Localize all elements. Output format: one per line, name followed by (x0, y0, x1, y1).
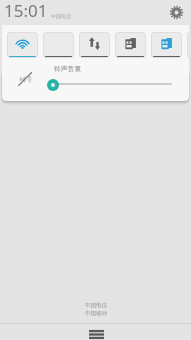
button[interactable]: Quick setting (115, 32, 146, 58)
button[interactable]: Menu (86, 327, 106, 339)
staticText: 中国移动 (85, 310, 107, 317)
staticText: 铃声音量 (54, 64, 82, 73)
button[interactable]: Quick setting (151, 32, 182, 58)
button[interactable]: Quick setting (7, 32, 38, 58)
staticText: 中国电信 (51, 13, 71, 19)
staticText: 15:01 (4, 0, 48, 22)
button[interactable]: Settings (166, 2, 186, 22)
button[interactable]: Ring volume (47, 79, 59, 91)
button[interactable]: Quick setting (187, 32, 189, 58)
button[interactable]: Quick setting (43, 32, 74, 58)
button[interactable]: Quick setting (79, 32, 110, 58)
staticText: 中国电信 (85, 302, 107, 309)
